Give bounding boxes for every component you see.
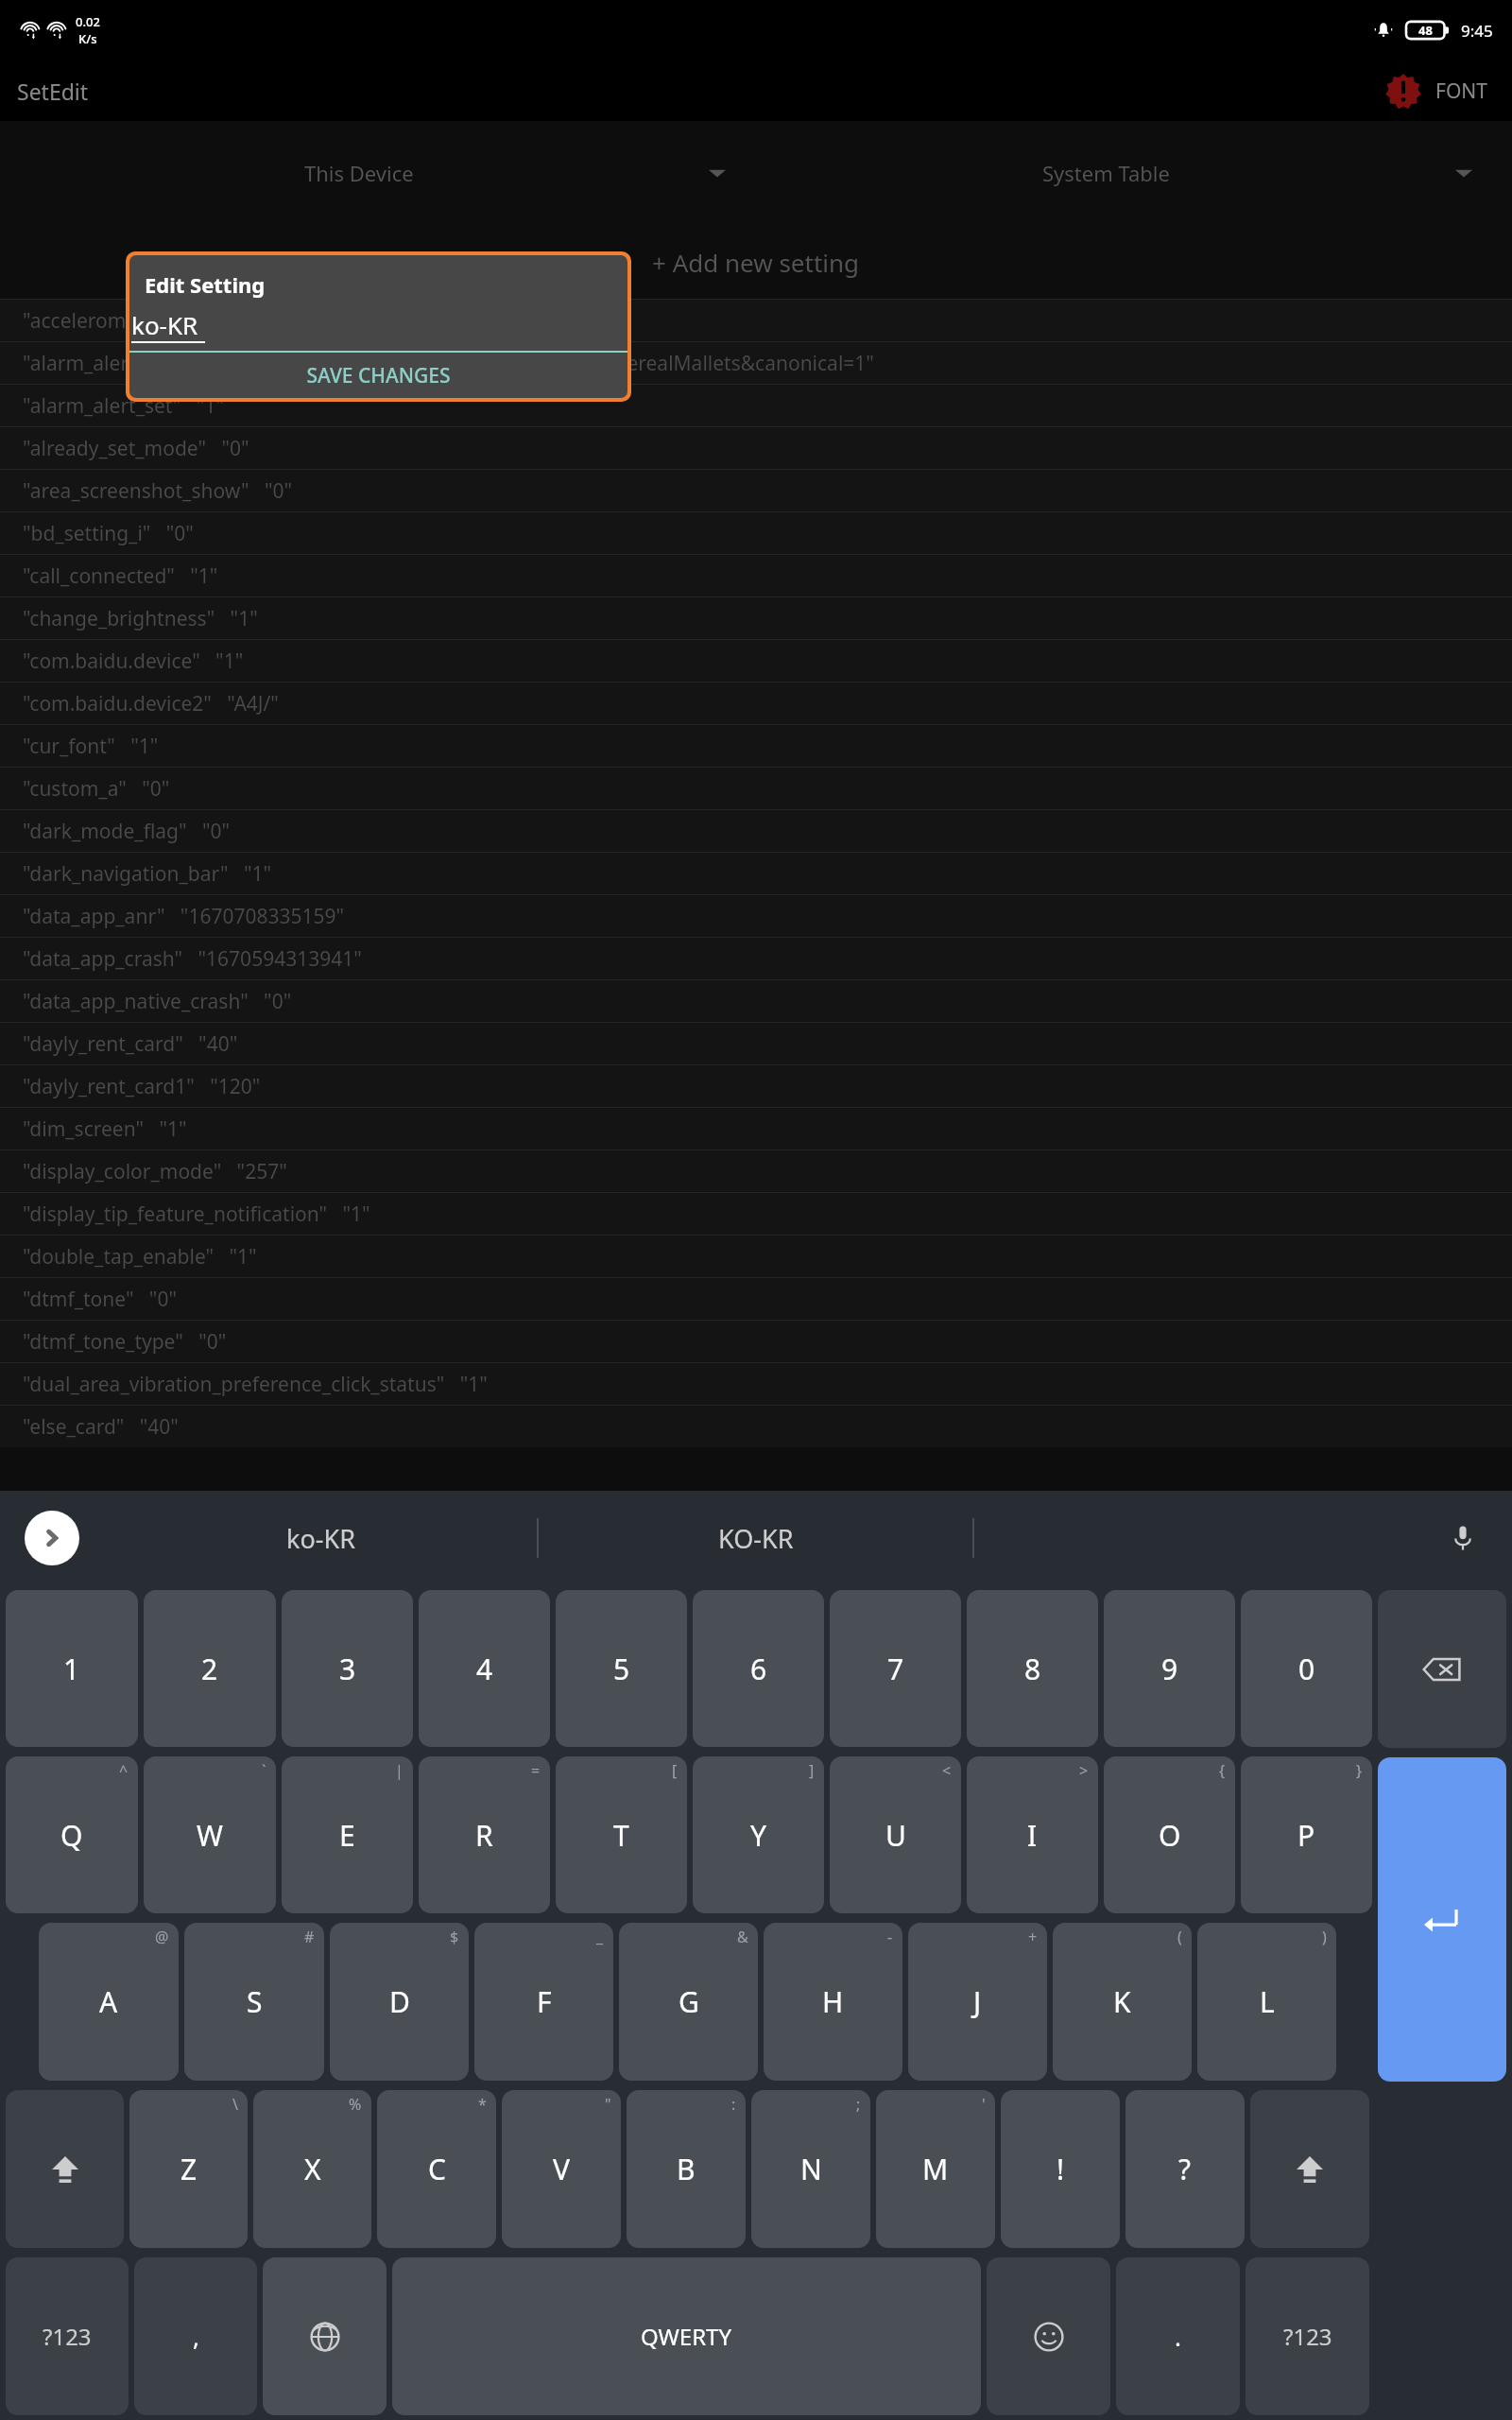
- staticText: 9:45: [1461, 20, 1493, 42]
- button[interactable]: Change language: [263, 2257, 387, 2415]
- button[interactable]: "call_connected" "1": [0, 555, 1512, 596]
- button[interactable]: $: [330, 1923, 469, 2081]
- button[interactable]: Warning: [1383, 71, 1424, 112]
- button[interactable]: Shift: [1250, 2090, 1369, 2248]
- button[interactable]: +: [908, 1923, 1047, 2081]
- button[interactable]: "else_card" "40": [0, 1406, 1512, 1447]
- button[interactable]: (: [1053, 1923, 1192, 2081]
- button[interactable]: "dark_navigation_bar" "1": [0, 853, 1512, 894]
- button[interactable]: }: [1241, 1756, 1372, 1913]
- button[interactable]: 7: [830, 1590, 961, 1747]
- button[interactable]: ]: [693, 1756, 824, 1913]
- button[interactable]: Enter: [1378, 1757, 1506, 2082]
- button[interactable]: KO-KR: [539, 1491, 972, 1585]
- button[interactable]: Expand toolbar: [25, 1511, 79, 1565]
- button[interactable]: :: [627, 2090, 746, 2248]
- button[interactable]: ;: [751, 2090, 870, 2248]
- button[interactable]: This Device: [9, 121, 756, 225]
- staticText: ?: [1178, 2150, 1192, 2188]
- button[interactable]: "dayly_rent_card" "40": [0, 1023, 1512, 1064]
- button[interactable]: {: [1104, 1756, 1235, 1913]
- button[interactable]: ": [502, 2090, 621, 2248]
- button[interactable]: ko-KR: [104, 1491, 537, 1585]
- button[interactable]: "double_tap_enable" "1": [0, 1236, 1512, 1277]
- button[interactable]: "data_app_anr" "1670708335159": [0, 895, 1512, 937]
- staticText: "alarm_alert" "content://media/internal/…: [23, 350, 874, 377]
- button[interactable]: "dtmf_tone" "0": [0, 1278, 1512, 1320]
- button[interactable]: 0: [1241, 1590, 1372, 1747]
- button[interactable]: >: [967, 1756, 1098, 1913]
- button[interactable]: Backspace: [1378, 1590, 1506, 1748]
- button[interactable]: _: [474, 1923, 613, 2081]
- staticText: N: [800, 2150, 822, 2188]
- button[interactable]: "dayly_rent_card1" "120": [0, 1065, 1512, 1107]
- button[interactable]: ?123: [6, 2257, 129, 2415]
- button[interactable]: "com.baidu.device" "1": [0, 640, 1512, 682]
- button[interactable]: + Add new setting: [0, 225, 1512, 299]
- button[interactable]: 2: [144, 1590, 276, 1747]
- staticText: 6: [750, 1650, 767, 1688]
- button[interactable]: "cur_font" "1": [0, 725, 1512, 767]
- button[interactable]: |: [282, 1756, 413, 1913]
- button[interactable]: "bd_setting_i" "0": [0, 512, 1512, 554]
- button[interactable]: "com.baidu.device2" "A4J/": [0, 683, 1512, 724]
- button[interactable]: -: [764, 1923, 902, 2081]
- button[interactable]: ?123: [1246, 2257, 1369, 2415]
- staticText: U: [885, 1816, 906, 1855]
- button[interactable]: ): [1197, 1923, 1336, 2081]
- button[interactable]: 8: [967, 1590, 1098, 1747]
- staticText: "dim_screen" "1": [23, 1115, 187, 1143]
- button[interactable]: "display_color_mode" "257": [0, 1150, 1512, 1192]
- button[interactable]: Voice input: [1438, 1513, 1487, 1563]
- button[interactable]: Emoji: [987, 2257, 1110, 2415]
- button[interactable]: "dual_area_vibration_preference_click_st…: [0, 1363, 1512, 1405]
- button[interactable]: 1: [6, 1590, 138, 1747]
- button[interactable]: *: [377, 2090, 496, 2248]
- button[interactable]: "dark_mode_flag" "0": [0, 810, 1512, 852]
- button[interactable]: 5: [556, 1590, 687, 1747]
- button[interactable]: SAVE CHANGES: [129, 353, 627, 398]
- staticText: 8: [1024, 1650, 1041, 1688]
- staticText: J: [973, 1982, 982, 2021]
- button[interactable]: "dim_screen" "1": [0, 1108, 1512, 1149]
- button[interactable]: "alarm_alert" "content://media/internal/…: [0, 342, 1512, 384]
- button[interactable]: "display_tip_feature_notification" "1": [0, 1193, 1512, 1235]
- button[interactable]: "area_screenshot_show" "0": [0, 470, 1512, 511]
- button[interactable]: %: [253, 2090, 371, 2248]
- button[interactable]: 3: [282, 1590, 413, 1747]
- button[interactable]: @: [39, 1923, 179, 2081]
- button[interactable]: System Table: [756, 121, 1503, 225]
- staticText: "bd_setting_i" "0": [23, 520, 194, 547]
- button[interactable]: ?: [1125, 2090, 1245, 2248]
- button[interactable]: =: [419, 1756, 550, 1913]
- button[interactable]: "alarm_alert_set" "1": [0, 385, 1512, 426]
- button[interactable]: "custom_a" "0": [0, 768, 1512, 809]
- staticText: |: [395, 1760, 404, 1781]
- button[interactable]: &: [619, 1923, 758, 2081]
- button[interactable]: 9: [1104, 1590, 1235, 1747]
- button[interactable]: <: [830, 1756, 961, 1913]
- button[interactable]: !: [1001, 2090, 1120, 2248]
- button[interactable]: .: [1116, 2257, 1240, 2415]
- button[interactable]: FONT: [1424, 68, 1499, 114]
- staticText: KO-KR: [718, 1521, 794, 1556]
- button[interactable]: "already_set_mode" "0": [0, 427, 1512, 469]
- button[interactable]: ,: [134, 2257, 257, 2415]
- button[interactable]: `: [144, 1756, 276, 1913]
- button[interactable]: Shift: [6, 2090, 124, 2248]
- button[interactable]: "accelerometer_rotation" "1": [0, 300, 1512, 341]
- button[interactable]: "data_app_native_crash" "0": [0, 980, 1512, 1022]
- button[interactable]: 4: [419, 1590, 550, 1747]
- staticText: %: [349, 2094, 362, 2115]
- button[interactable]: #: [184, 1923, 324, 2081]
- button[interactable]: "dtmf_tone_type" "0": [0, 1321, 1512, 1362]
- button[interactable]: ^: [6, 1756, 138, 1913]
- button[interactable]: \: [129, 2090, 248, 2248]
- staticText: !: [1057, 2150, 1065, 2188]
- button[interactable]: "data_app_crash" "1670594313941": [0, 938, 1512, 979]
- button[interactable]: 6: [693, 1590, 824, 1747]
- button[interactable]: QWERTY: [392, 2257, 981, 2415]
- button[interactable]: "change_brightness" "1": [0, 597, 1512, 639]
- button[interactable]: ': [876, 2090, 995, 2248]
- button[interactable]: [: [556, 1756, 687, 1913]
